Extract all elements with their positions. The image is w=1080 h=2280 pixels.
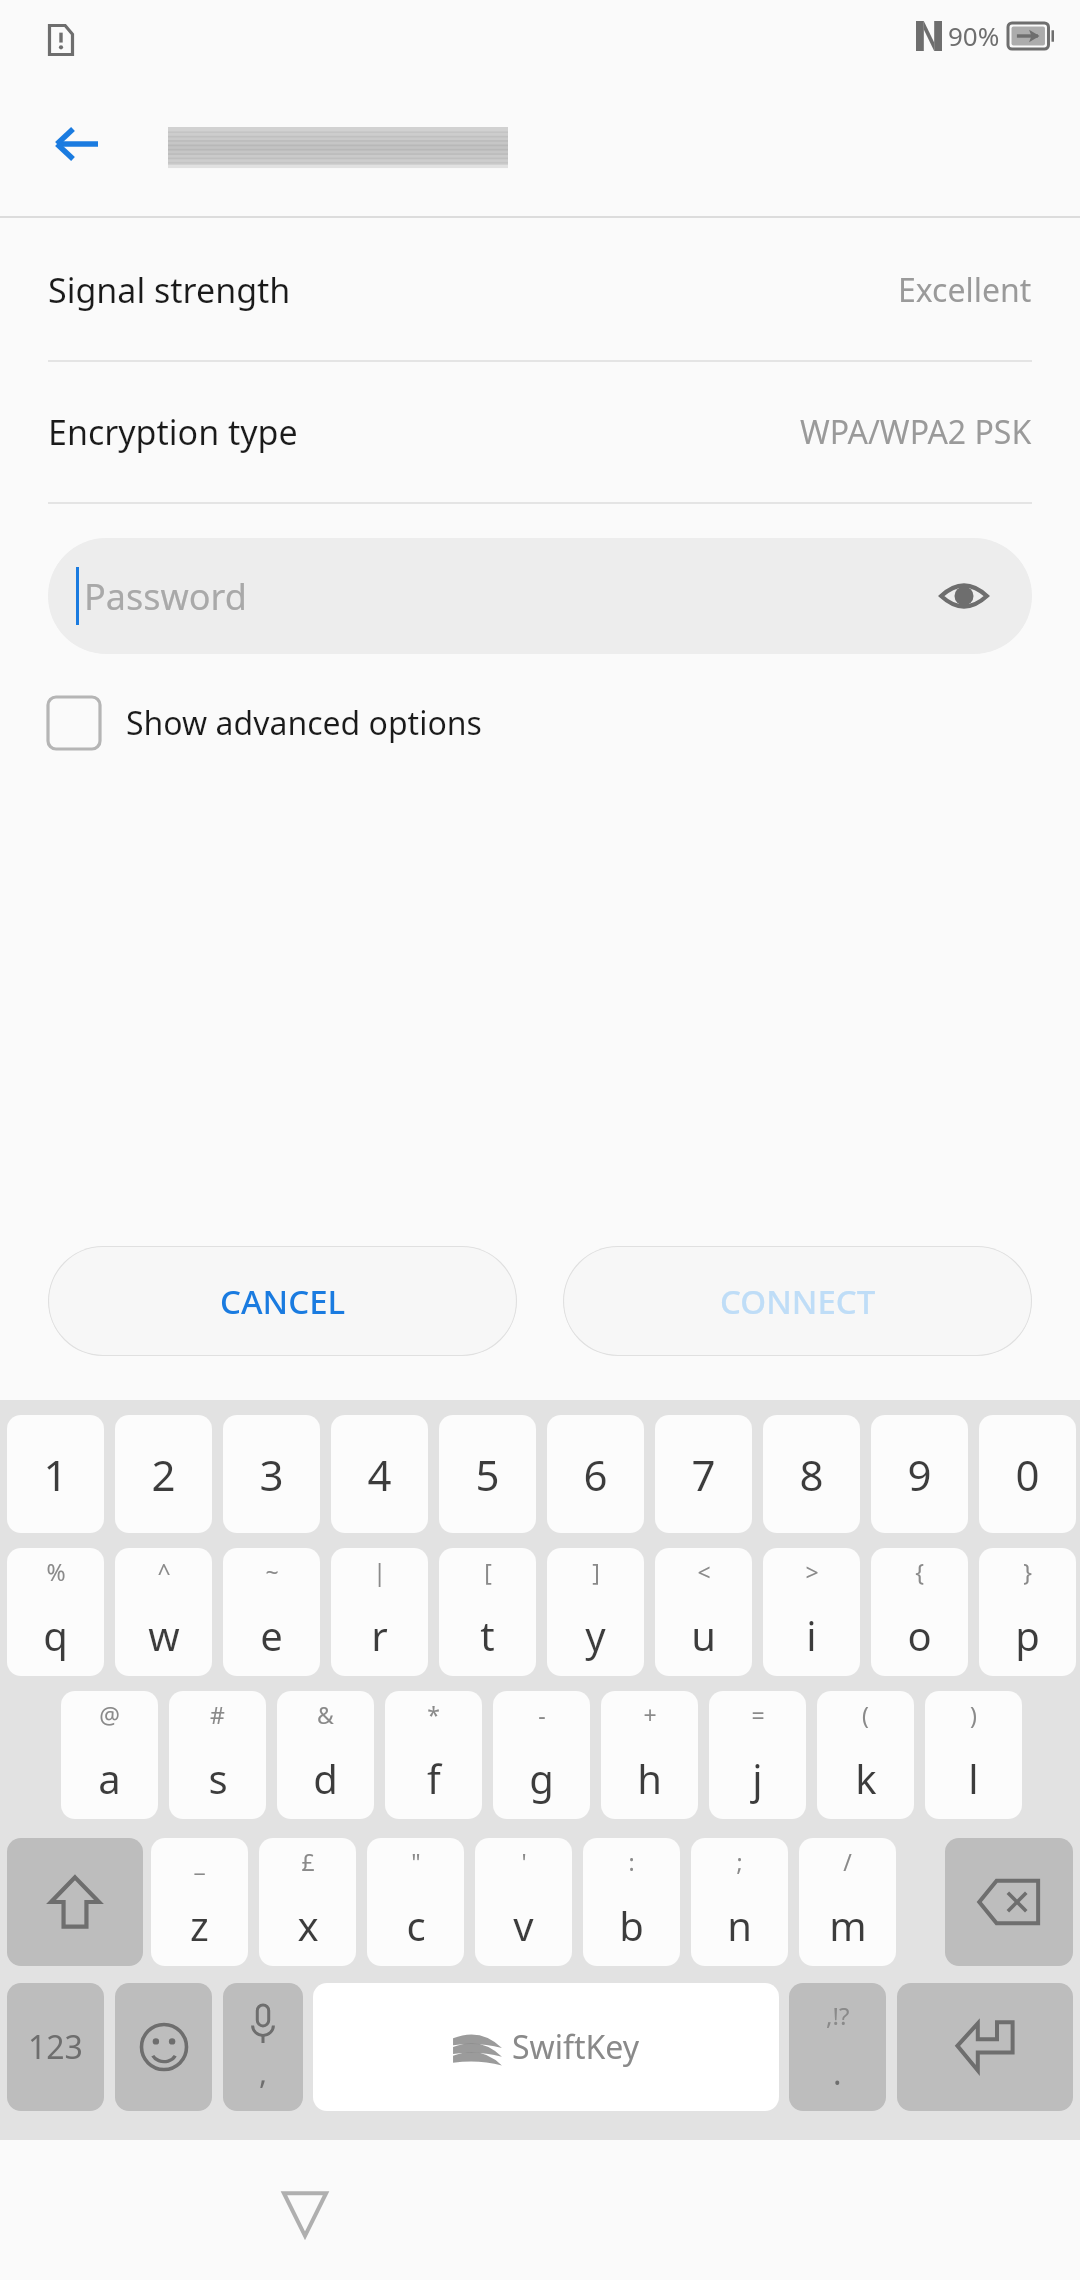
staticText: k <box>855 1751 877 1805</box>
button[interactable]: ^ <box>115 1548 212 1676</box>
staticText: l <box>968 1751 979 1805</box>
staticText: 1 <box>43 1446 68 1503</box>
staticText: Signal strength <box>48 267 291 313</box>
button[interactable]: 5 <box>439 1415 536 1533</box>
staticText: % <box>46 1556 66 1587</box>
staticText: CANCEL <box>220 1279 346 1324</box>
staticText: " <box>411 1846 421 1877</box>
button[interactable]: % <box>7 1548 104 1676</box>
button[interactable]: ( <box>817 1691 914 1819</box>
staticText: d <box>313 1751 338 1805</box>
staticText: . <box>833 2051 842 2095</box>
button[interactable]: 3 <box>223 1415 320 1533</box>
button[interactable]: & <box>277 1691 374 1819</box>
button[interactable]: = <box>709 1691 806 1819</box>
staticText: e <box>260 1608 283 1662</box>
button[interactable]: 1 <box>7 1415 104 1533</box>
button[interactable]: 9 <box>871 1415 968 1533</box>
button[interactable]: _ <box>151 1838 248 1966</box>
button[interactable]: Shift <box>7 1838 143 1966</box>
staticText: ' <box>521 1846 527 1877</box>
staticText: ) <box>970 1699 977 1730</box>
button[interactable]: Enter <box>897 1983 1073 2111</box>
button[interactable]: CONNECT <box>563 1246 1032 1356</box>
button[interactable]: £ <box>259 1838 356 1966</box>
button[interactable]: ,!? <box>789 1983 886 2111</box>
staticText: & <box>317 1699 334 1730</box>
button[interactable]: ' <box>475 1838 572 1966</box>
staticText: 123 <box>28 2025 83 2069</box>
button[interactable]: { <box>871 1548 968 1676</box>
button[interactable]: Show password <box>934 566 994 626</box>
staticText: | <box>373 1556 386 1587</box>
button[interactable]: 8 <box>763 1415 860 1533</box>
staticText: ( <box>862 1699 869 1730</box>
staticText: £ <box>301 1846 315 1877</box>
staticText: z <box>190 1898 209 1952</box>
staticText: # <box>210 1699 225 1730</box>
staticText: Excellent <box>898 268 1032 312</box>
staticText: 8 <box>799 1446 824 1503</box>
button[interactable]: Encryption type <box>0 362 1080 502</box>
button[interactable]: | <box>331 1548 428 1676</box>
staticText: p <box>1015 1608 1040 1662</box>
button[interactable]: } <box>979 1548 1076 1676</box>
button[interactable]: + <box>601 1691 698 1819</box>
button[interactable]: [ <box>439 1548 536 1676</box>
button[interactable]: Show advanced options <box>48 688 1080 758</box>
button[interactable]: Space <box>313 1983 779 2111</box>
staticText: j <box>752 1751 763 1805</box>
button[interactable]: > <box>763 1548 860 1676</box>
button[interactable]: * <box>385 1691 482 1819</box>
button[interactable]: / <box>799 1838 896 1966</box>
button[interactable]: : <box>583 1838 680 1966</box>
staticText: u <box>691 1608 716 1662</box>
staticText: v <box>513 1898 534 1952</box>
button[interactable]: Password <box>48 538 1032 654</box>
button[interactable]: Emoji <box>115 1983 212 2111</box>
button[interactable]: CANCEL <box>48 1246 517 1356</box>
button[interactable]: " <box>367 1838 464 1966</box>
staticText: g <box>529 1751 554 1805</box>
button[interactable]: Signal strength <box>0 220 1080 360</box>
staticText: ~ <box>265 1556 279 1587</box>
button[interactable]: ; <box>691 1838 788 1966</box>
staticText: CONNECT <box>720 1279 876 1324</box>
button[interactable]: # <box>169 1691 266 1819</box>
button[interactable]: ] <box>547 1548 644 1676</box>
staticText: ,!? <box>826 1999 850 2032</box>
button[interactable]: 6 <box>547 1415 644 1533</box>
button[interactable]: Back <box>30 97 124 191</box>
staticText: r <box>371 1608 388 1662</box>
staticText: q <box>43 1608 68 1662</box>
button[interactable]: @ <box>61 1691 158 1819</box>
button[interactable]: Backspace <box>945 1838 1073 1966</box>
button[interactable]: Hide keyboard <box>250 2159 360 2269</box>
staticText: a <box>98 1751 121 1805</box>
staticText: Password <box>84 572 247 621</box>
staticText: : <box>628 1846 635 1877</box>
staticText: > <box>805 1556 819 1587</box>
staticText: @ <box>99 1699 120 1730</box>
button[interactable]: 123 <box>7 1983 104 2111</box>
staticText: } <box>1023 1556 1032 1587</box>
button[interactable]: < <box>655 1548 752 1676</box>
button[interactable]: ~ <box>223 1548 320 1676</box>
staticText: ; <box>736 1846 743 1877</box>
staticText: b <box>619 1898 644 1952</box>
button[interactable]: 7 <box>655 1415 752 1533</box>
staticText: ^ <box>157 1556 171 1587</box>
staticText: x <box>297 1898 319 1952</box>
staticText: i <box>806 1608 817 1662</box>
button[interactable]: Voice input <box>223 1983 303 2111</box>
staticText: SwiftKey <box>512 2025 640 2069</box>
staticText: WPA/WPA2 PSK <box>800 410 1032 454</box>
staticText: Show advanced options <box>126 701 482 745</box>
staticText: o <box>907 1608 932 1662</box>
button[interactable]: - <box>493 1691 590 1819</box>
button[interactable]: ) <box>925 1691 1022 1819</box>
staticText: c <box>406 1898 426 1952</box>
button[interactable]: 0 <box>979 1415 1076 1533</box>
button[interactable]: 2 <box>115 1415 212 1533</box>
button[interactable]: 4 <box>331 1415 428 1533</box>
